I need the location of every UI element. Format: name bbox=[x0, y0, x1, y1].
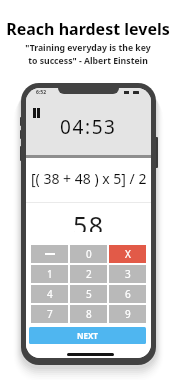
staticText: 1 bbox=[47, 267, 53, 281]
staticText: 9 bbox=[125, 307, 131, 321]
staticText: 0 bbox=[86, 247, 92, 261]
button[interactable]: 5 bbox=[70, 285, 107, 303]
staticText: 4 bbox=[47, 287, 53, 301]
staticText: [( 38 + 48 ) x 5] / 2 bbox=[31, 169, 147, 188]
staticText: 6 bbox=[125, 287, 131, 301]
staticText: 2 bbox=[86, 267, 92, 281]
button[interactable]: 1 bbox=[31, 265, 68, 283]
button[interactable]: 9 bbox=[109, 305, 146, 323]
staticText: Reach hardest levels bbox=[0, 18, 176, 40]
button[interactable]: X bbox=[109, 245, 146, 263]
button[interactable]: 6 bbox=[109, 285, 146, 303]
staticText: X bbox=[125, 247, 131, 261]
staticText: "Training everyday is the key to success… bbox=[0, 42, 176, 67]
staticText: NEXT bbox=[77, 330, 98, 341]
staticText: 7 bbox=[47, 307, 53, 321]
button[interactable]: 3 bbox=[109, 265, 146, 283]
button[interactable]: 8 bbox=[70, 305, 107, 323]
staticText: 5 bbox=[86, 287, 92, 301]
staticText: 58 bbox=[73, 208, 105, 232]
button[interactable]: 2 bbox=[70, 265, 107, 283]
button[interactable]: 0 bbox=[70, 245, 107, 263]
staticText: 8 bbox=[86, 307, 92, 321]
button[interactable]: Minus bbox=[31, 245, 68, 263]
button[interactable]: NEXT bbox=[29, 327, 146, 344]
button[interactable]: 7 bbox=[31, 305, 68, 323]
button[interactable]: 4 bbox=[31, 285, 68, 303]
staticText: 3 bbox=[125, 267, 131, 281]
staticText: 04:53 bbox=[60, 114, 117, 138]
staticText: 6:52 bbox=[36, 89, 46, 96]
